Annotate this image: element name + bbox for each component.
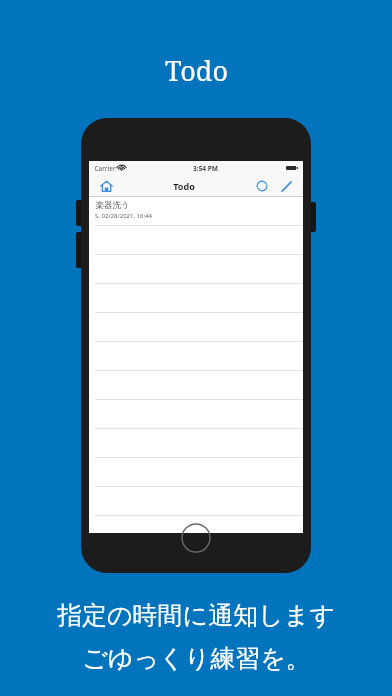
staticText: 楽器洗う xyxy=(95,200,130,211)
staticText: Todo xyxy=(165,52,228,89)
button[interactable] xyxy=(89,516,303,533)
button[interactable]: Refresh xyxy=(253,177,271,195)
staticText: ごゆっくり練習を。 xyxy=(82,643,311,674)
staticText: S, 02/28/2021, 16:44 xyxy=(95,212,152,220)
button[interactable]: Home xyxy=(97,177,115,195)
button[interactable]: Edit xyxy=(277,177,295,195)
staticText: Carrier xyxy=(94,164,116,173)
staticText: 3:54 PM xyxy=(193,164,218,173)
staticText: 指定の時間に通知します xyxy=(57,600,335,631)
button[interactable]: 楽器洗う xyxy=(89,197,303,225)
staticText: Todo xyxy=(173,180,195,192)
